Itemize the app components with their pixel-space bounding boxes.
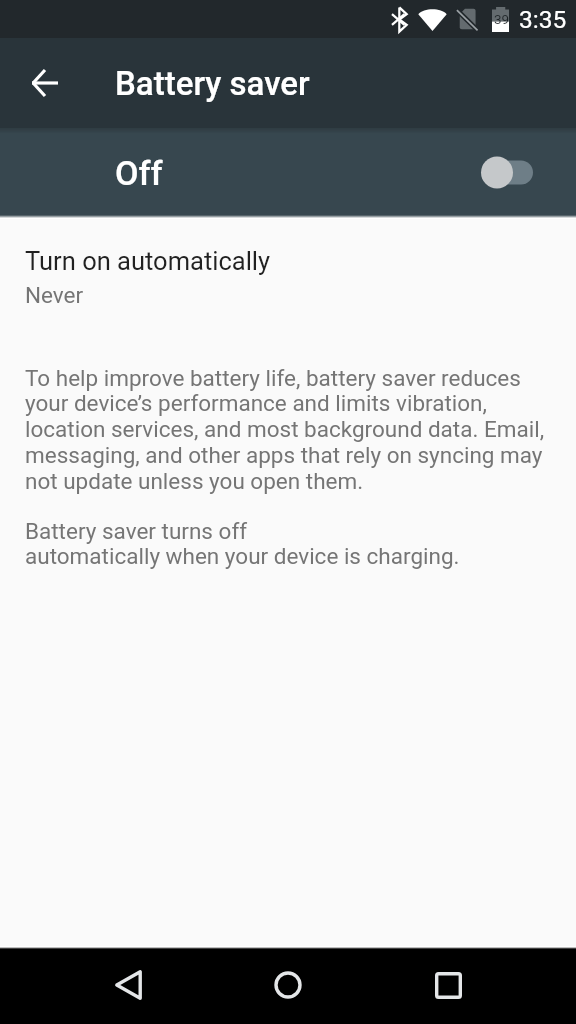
button[interactable]: Navigate up	[0, 38, 90, 128]
button[interactable]: Battery saver toggle, off	[481, 128, 576, 218]
staticText: Off	[115, 153, 163, 193]
staticText: Battery saver	[115, 64, 310, 103]
staticText: Turn on automatically	[25, 246, 271, 276]
button[interactable]: Turn on automatically	[0, 219, 576, 322]
staticText: 3:35	[519, 5, 567, 34]
staticText: Never	[25, 282, 84, 308]
button[interactable]: Recent apps	[408, 946, 488, 1024]
button[interactable]: Home	[248, 946, 328, 1024]
staticText: 39	[494, 11, 510, 27]
button[interactable]: Off	[0, 128, 576, 218]
staticText: Battery saver turns off automatically wh…	[25, 518, 460, 570]
staticText: To help improve battery life, battery sa…	[25, 365, 558, 495]
button[interactable]: Back	[88, 946, 168, 1024]
